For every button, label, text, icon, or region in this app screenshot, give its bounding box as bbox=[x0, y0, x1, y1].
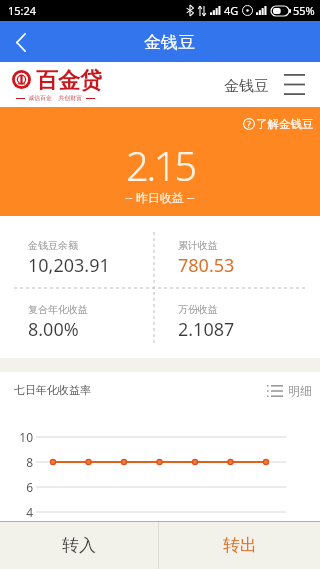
staticText: 8.00% bbox=[28, 317, 79, 342]
staticText: 七日年化收益率 bbox=[14, 383, 91, 397]
staticText: 万份收益 bbox=[178, 303, 218, 316]
staticText: 10,203.91 bbox=[28, 253, 110, 278]
staticText: 复合年化收益 bbox=[28, 303, 88, 316]
staticText: 金钱豆余额 bbox=[28, 239, 78, 252]
staticText: 4 bbox=[26, 504, 33, 520]
staticText: 转出 bbox=[223, 535, 257, 556]
staticText: 诚信百金 共创财富 bbox=[28, 94, 83, 102]
staticText: 55% bbox=[293, 3, 315, 18]
staticText: ? bbox=[247, 118, 251, 130]
staticText: 10 bbox=[19, 429, 33, 445]
staticText: 累计收益 bbox=[178, 239, 218, 252]
staticText: 780.53 bbox=[178, 253, 235, 278]
staticText: 6 bbox=[26, 479, 33, 495]
button[interactable]: 明细 bbox=[267, 383, 312, 398]
button[interactable]: 转入 bbox=[0, 522, 158, 569]
staticText: 百金贷 bbox=[36, 67, 102, 95]
button[interactable]: ? bbox=[243, 117, 314, 131]
button[interactable]: 金钱豆余额 bbox=[28, 239, 110, 278]
staticText: 15:24 bbox=[8, 3, 37, 18]
staticText: 2.1087 bbox=[178, 317, 235, 342]
staticText: -- 昨日收益 -- bbox=[125, 189, 195, 205]
button[interactable]: 金钱豆 bbox=[224, 77, 269, 96]
button[interactable]: Menu bbox=[281, 72, 307, 97]
staticText: 4G bbox=[224, 3, 239, 18]
button[interactable]: Back bbox=[0, 21, 44, 62]
staticText: 明细 bbox=[288, 383, 312, 398]
staticText: 转入 bbox=[62, 535, 96, 556]
button[interactable]: 复合年化收益 bbox=[28, 303, 88, 342]
button[interactable]: 万份收益 bbox=[178, 303, 235, 342]
button[interactable]: 转出 bbox=[159, 522, 320, 569]
staticText: 8 bbox=[26, 454, 33, 470]
staticText: 了解金钱豆 bbox=[256, 117, 314, 131]
staticText: 2.15 bbox=[126, 138, 195, 192]
button[interactable]: 累计收益 bbox=[178, 239, 235, 278]
staticText: 金钱豆 bbox=[144, 32, 195, 53]
